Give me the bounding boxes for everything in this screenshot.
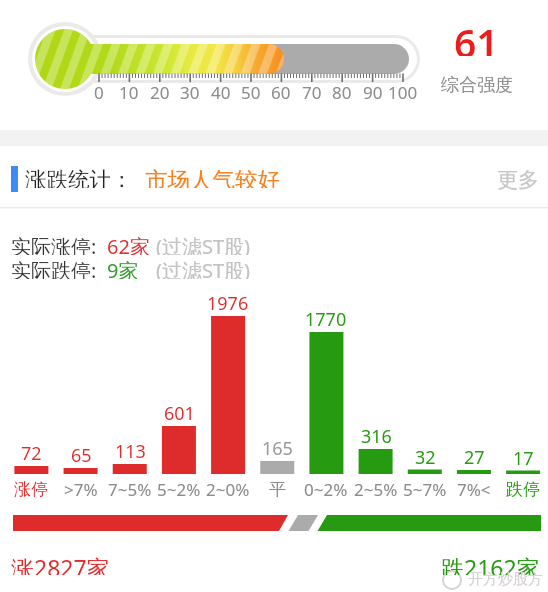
staticText: 7~5% <box>108 478 152 500</box>
staticText: 62家 <box>107 233 150 255</box>
staticText: 更多 <box>497 167 539 190</box>
staticText: 实际涨停: <box>11 233 97 255</box>
staticText: 0 <box>94 81 104 99</box>
staticText: 0~2% <box>304 478 348 500</box>
staticText: 20 <box>150 81 170 99</box>
staticText: 601 <box>164 401 195 423</box>
staticText: 实际跌停: <box>11 257 97 279</box>
staticText: 2~0% <box>206 478 250 500</box>
staticText: 61 <box>454 16 499 56</box>
staticText: 市场人气较好 <box>145 166 280 188</box>
staticText: 40 <box>211 81 231 99</box>
staticText: 5~7% <box>403 478 447 500</box>
staticText: 113 <box>115 439 146 461</box>
staticText: 316 <box>361 424 392 446</box>
staticText: 100 <box>388 81 418 99</box>
staticText: 平 <box>269 479 286 500</box>
staticText: 涨2827家 <box>11 552 110 575</box>
staticText: 跌2162家 <box>441 552 540 575</box>
button[interactable]: 更多 <box>483 167 539 190</box>
staticText: 17 <box>513 446 534 468</box>
staticText: 7%< <box>457 478 491 500</box>
staticText: 65 <box>71 443 92 465</box>
staticText: 开方炒股方 <box>468 570 543 588</box>
staticText: 2~5% <box>354 478 398 500</box>
button[interactable]: 涨跌统计： <box>25 166 143 188</box>
staticText: 27 <box>464 445 485 467</box>
staticText: 涨跌统计： <box>25 166 133 188</box>
staticText: 1770 <box>305 307 347 329</box>
staticText: 10 <box>119 81 139 99</box>
staticText: >7% <box>64 478 98 500</box>
staticText: 涨停 <box>14 479 48 500</box>
staticText: 9家 <box>107 257 139 279</box>
staticText: 30 <box>180 81 200 99</box>
staticText: 72 <box>21 441 42 463</box>
staticText: 跌停 <box>506 479 540 500</box>
staticText: 70 <box>302 81 322 99</box>
staticText: (过滤ST股) <box>156 257 251 279</box>
staticText: 80 <box>332 81 352 99</box>
staticText: 50 <box>241 81 261 99</box>
staticText: 1976 <box>207 291 249 313</box>
staticText: 165 <box>262 436 293 458</box>
staticText: 5~2% <box>157 478 201 500</box>
staticText: 90 <box>363 81 383 99</box>
staticText: 综合强度 <box>441 74 513 94</box>
staticText: 60 <box>271 81 291 99</box>
staticText: 32 <box>415 445 436 467</box>
staticText: (过滤ST股) <box>156 233 251 255</box>
